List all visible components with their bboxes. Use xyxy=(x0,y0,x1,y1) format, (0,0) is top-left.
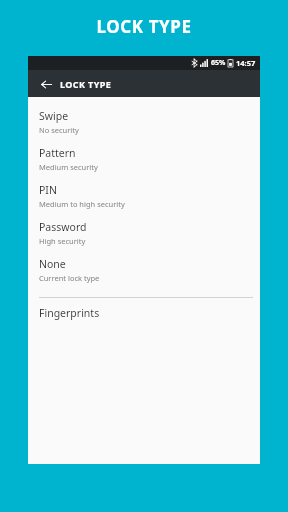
staticText: Medium security xyxy=(39,162,98,172)
staticText: Medium to high security xyxy=(39,199,125,209)
staticText: PIN xyxy=(39,183,57,197)
staticText: None xyxy=(39,257,66,271)
staticText: Current lock type xyxy=(39,273,100,283)
staticText: No security xyxy=(39,125,79,135)
staticText: 14:57 xyxy=(236,58,256,68)
staticText: High security xyxy=(39,236,86,246)
staticText: 65% xyxy=(211,58,226,68)
staticText: Swipe xyxy=(39,109,69,123)
staticText: LOCK TYPE xyxy=(60,78,112,90)
button[interactable]: Swipe xyxy=(28,104,260,141)
button[interactable]: Password xyxy=(28,215,260,252)
staticText: Password xyxy=(39,220,87,234)
button[interactable]: Fingerprints xyxy=(28,298,260,328)
button[interactable]: Pattern xyxy=(28,141,260,178)
staticText: Pattern xyxy=(39,146,76,160)
button[interactable]: None xyxy=(28,252,260,289)
button[interactable]: PIN xyxy=(28,178,260,215)
button[interactable]: Back xyxy=(36,74,56,94)
staticText: LOCK TYPE xyxy=(0,15,288,38)
staticText: Fingerprints xyxy=(39,306,100,320)
